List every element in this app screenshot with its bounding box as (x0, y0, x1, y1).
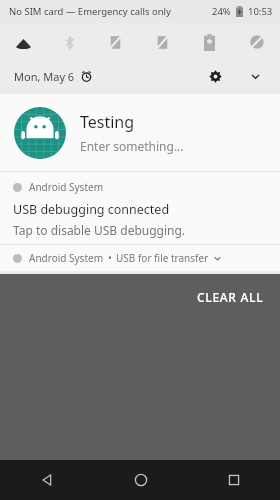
button[interactable]: Back (0, 460, 94, 500)
button[interactable]: Settings (202, 63, 228, 89)
staticText: Testing (80, 111, 135, 133)
button[interactable]: Location (233, 23, 280, 61)
button[interactable]: Home (94, 460, 187, 500)
staticText: Android System (29, 180, 104, 194)
staticText: Mon, May 6 (14, 69, 75, 84)
staticText: Android System (29, 251, 104, 265)
button[interactable]: Android System (0, 245, 280, 271)
button[interactable]: Wi-Fi (0, 23, 46, 61)
button[interactable]: Do not disturb (92, 23, 139, 61)
button[interactable]: Testing (0, 94, 280, 171)
staticText: Tap to disable USB debugging. (13, 222, 186, 238)
button[interactable]: Collapse (242, 63, 268, 89)
button[interactable]: Bluetooth (46, 23, 92, 61)
staticText: No SIM card — Emergency calls only (9, 5, 171, 18)
staticText: • (108, 251, 112, 265)
staticText: CLEAR ALL (197, 289, 264, 305)
staticText: USB for file transfer (116, 251, 209, 265)
button[interactable]: Flashlight (139, 23, 186, 61)
button[interactable]: Battery saver (186, 23, 233, 61)
staticText: Enter something... (80, 138, 184, 154)
staticText: 24% (212, 5, 231, 18)
button[interactable]: CLEAR ALL (191, 284, 270, 310)
button[interactable]: Recent apps (187, 460, 280, 500)
staticText: 10:53 (248, 5, 273, 18)
button[interactable]: Android System (0, 172, 280, 244)
staticText: USB debugging connected (13, 201, 170, 218)
